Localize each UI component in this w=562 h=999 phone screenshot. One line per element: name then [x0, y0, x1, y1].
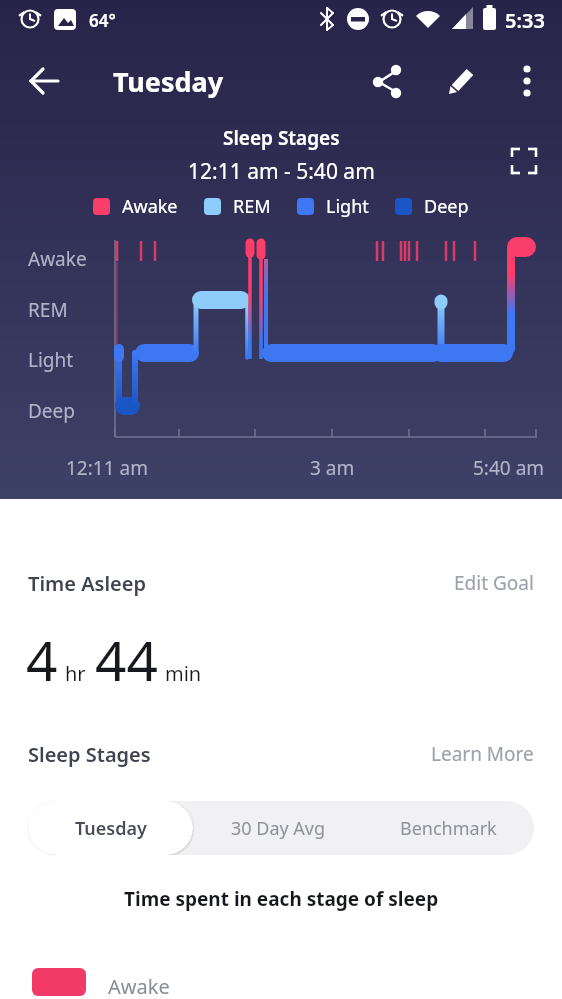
staticText: Awake [108, 973, 170, 999]
staticText: Tuesday [75, 816, 147, 841]
staticText: Awake [28, 246, 87, 272]
staticText: 44 [95, 622, 158, 697]
staticText: Tuesday [113, 63, 224, 100]
button[interactable]: Benchmark [363, 801, 534, 855]
staticText: 30 Day Avg [231, 816, 326, 841]
staticText: 12:11 am - 5:40 am [188, 157, 375, 186]
staticText: Learn More [431, 741, 534, 767]
staticText: Time Asleep [28, 570, 147, 597]
staticText: min [165, 660, 202, 687]
staticText: 64° [89, 9, 116, 32]
button[interactable]: Edit Goal [450, 566, 538, 600]
staticText: Deep [424, 194, 469, 219]
button[interactable]: 30 Day Avg [193, 801, 363, 855]
staticText: Light [28, 347, 74, 373]
staticText: 12:11 am [66, 455, 148, 481]
button[interactable] [20, 59, 66, 103]
staticText: Time spent in each stage of sleep [124, 886, 439, 912]
button[interactable] [505, 59, 547, 103]
staticText: hr [65, 660, 86, 687]
staticText: Sleep Stages [28, 741, 151, 768]
staticText: 5:40 am [473, 455, 545, 481]
staticText: 5:33 [505, 7, 545, 34]
button[interactable]: Tuesday [28, 801, 193, 855]
button[interactable] [439, 59, 483, 103]
staticText: Awake [122, 194, 178, 219]
staticText: REM [233, 194, 271, 219]
staticText: 3 am [310, 455, 355, 481]
button[interactable] [504, 141, 544, 181]
staticText: Deep [28, 398, 75, 424]
staticText: REM [28, 297, 68, 323]
staticText: Edit Goal [454, 570, 534, 596]
staticText: Light [326, 194, 369, 219]
button[interactable] [365, 59, 409, 103]
staticText: 4 [26, 622, 58, 697]
button[interactable]: Learn More [427, 737, 538, 771]
staticText: Benchmark [400, 816, 497, 841]
staticText: Sleep Stages [223, 125, 340, 151]
